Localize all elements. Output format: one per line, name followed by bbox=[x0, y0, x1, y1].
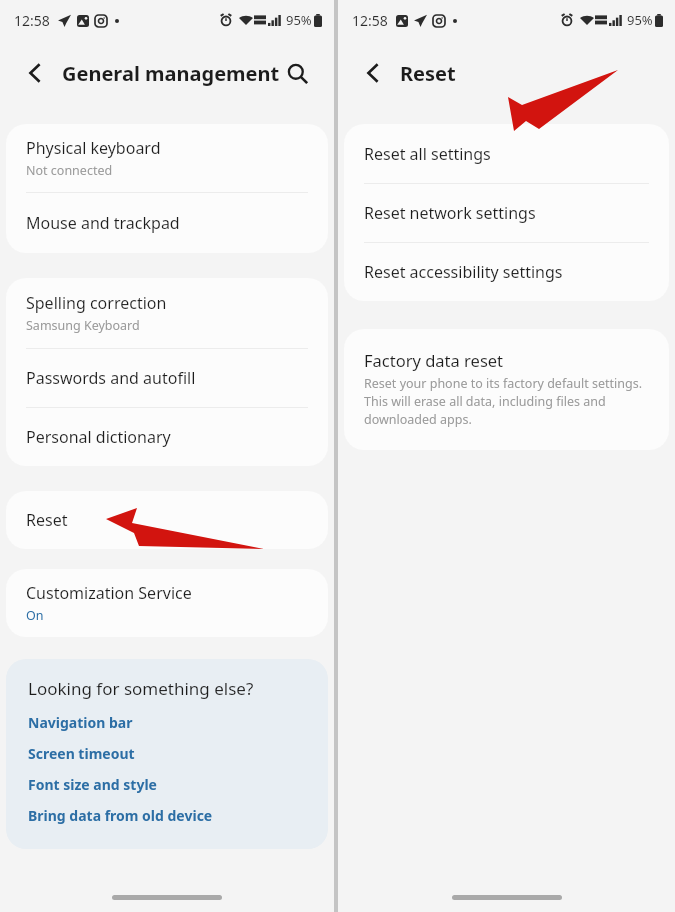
staticText: Reset bbox=[26, 509, 68, 531]
staticText: Navigation bar bbox=[28, 713, 133, 732]
staticText: Reset network settings bbox=[364, 202, 536, 224]
button[interactable]: Physical keyboard bbox=[6, 124, 328, 192]
staticText: 12:58 bbox=[14, 11, 50, 30]
button[interactable]: Back bbox=[354, 53, 394, 93]
button[interactable]: Font size and style bbox=[28, 775, 157, 794]
staticText: Screen timeout bbox=[28, 744, 135, 763]
staticText: 95% bbox=[627, 11, 653, 29]
staticText: Not connected bbox=[26, 162, 113, 179]
button[interactable]: Reset bbox=[6, 491, 328, 549]
staticText: Reset bbox=[400, 60, 456, 87]
button[interactable]: Navigation bar bbox=[28, 713, 133, 732]
staticText: Reset your phone to its factory default … bbox=[364, 375, 645, 428]
staticText: Reset accessibility settings bbox=[364, 261, 563, 283]
button[interactable]: Customization Service bbox=[6, 569, 328, 637]
button[interactable]: Search bbox=[276, 52, 318, 94]
staticText: Font size and style bbox=[28, 775, 157, 794]
button[interactable]: Back bbox=[16, 53, 56, 93]
staticText: Looking for something else? bbox=[28, 677, 254, 700]
button[interactable]: Passwords and autofill bbox=[6, 349, 328, 407]
button[interactable]: Bring data from old device bbox=[28, 806, 213, 825]
button[interactable]: Spelling correction bbox=[6, 278, 328, 348]
button[interactable]: Screen timeout bbox=[28, 744, 135, 763]
staticText: Bring data from old device bbox=[28, 806, 213, 825]
staticText: Spelling correction bbox=[26, 292, 167, 314]
staticText: Personal dictionary bbox=[26, 426, 171, 448]
button[interactable]: Mouse and trackpad bbox=[6, 193, 328, 253]
staticText: Reset all settings bbox=[364, 143, 491, 165]
staticText: Factory data reset bbox=[364, 349, 504, 371]
staticText: Physical keyboard bbox=[26, 137, 161, 159]
button[interactable]: Reset accessibility settings bbox=[344, 243, 669, 301]
staticText: 95% bbox=[286, 11, 312, 29]
staticText: Customization Service bbox=[26, 582, 192, 604]
button[interactable]: Personal dictionary bbox=[6, 408, 328, 466]
button[interactable]: Reset all settings bbox=[344, 124, 669, 183]
staticText: Samsung Keyboard bbox=[26, 317, 140, 334]
staticText: General management bbox=[62, 60, 280, 87]
button[interactable]: Factory data reset bbox=[344, 329, 669, 450]
staticText: On bbox=[26, 607, 44, 624]
staticText: Passwords and autofill bbox=[26, 367, 196, 389]
staticText: Mouse and trackpad bbox=[26, 212, 180, 234]
button[interactable]: Reset network settings bbox=[344, 184, 669, 242]
staticText: 12:58 bbox=[352, 11, 388, 30]
